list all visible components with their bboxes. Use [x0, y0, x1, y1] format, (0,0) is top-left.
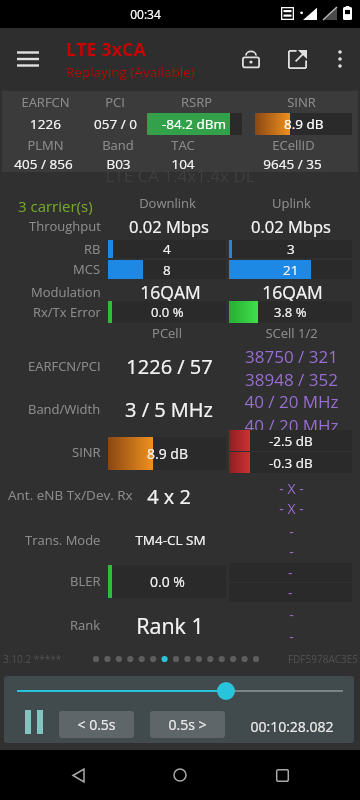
staticText: 3	[287, 240, 295, 258]
staticText: Rx/Tx Error	[33, 303, 101, 321]
staticText: B03	[106, 155, 131, 173]
staticText: ECellID	[272, 136, 315, 154]
staticText: 3 carrier(s)	[18, 196, 93, 216]
staticText: 4	[163, 240, 171, 258]
staticText: 40 / 20 MHz	[244, 390, 339, 413]
staticText: - X -	[279, 479, 304, 498]
staticText: -	[288, 583, 293, 602]
staticText: 1226 / 57	[126, 353, 213, 380]
staticText: RB	[84, 240, 101, 258]
button[interactable]: More options	[320, 39, 360, 79]
button[interactable]: Recent apps	[258, 751, 306, 799]
staticText: SINR	[287, 93, 316, 111]
staticText: 0.0 %	[150, 572, 185, 591]
staticText: 0.02 Mbps	[129, 215, 209, 237]
staticText: -	[289, 522, 294, 541]
staticText: TAC	[171, 136, 195, 154]
staticText: Uplink	[272, 194, 311, 212]
staticText: -	[289, 605, 294, 624]
button[interactable]: < 0.5s	[59, 711, 134, 738]
staticText: 4 x 2	[147, 483, 191, 510]
staticText: -	[289, 542, 294, 561]
staticText: EARFCN/PCI	[28, 357, 101, 375]
staticText: FDF5978AC3E5	[287, 652, 358, 666]
button[interactable]: 0.5s >	[150, 711, 225, 738]
staticText: TM4-CL SM	[135, 531, 206, 549]
staticText: 405 / 856	[14, 155, 73, 173]
staticText: 16QAM	[262, 280, 323, 304]
staticText: Downlink	[139, 194, 196, 212]
staticText: 00:10:28.082	[232, 717, 352, 736]
staticText: MCS	[73, 260, 101, 278]
button[interactable]: Home	[156, 751, 204, 799]
staticText: 0.0 %	[151, 303, 184, 321]
staticText: 16QAM	[140, 280, 201, 304]
button[interactable]: Back	[54, 751, 102, 799]
staticText: 8.9 dB	[284, 115, 324, 133]
staticText: BLER	[70, 572, 101, 590]
staticText: -	[288, 563, 293, 582]
staticText: Band/Width	[28, 400, 101, 418]
staticText: 3.8 %	[274, 303, 307, 321]
staticText: Rank 1	[136, 611, 204, 639]
button[interactable]: Open in new window	[274, 36, 320, 82]
staticText: Modulation	[31, 283, 101, 301]
staticText: Trans. Mode	[25, 531, 101, 549]
staticText: Ant. eNB Tx/Dev. Rx	[8, 486, 133, 504]
staticText: < 0.5s	[77, 715, 116, 734]
staticText: RSRP	[181, 93, 212, 111]
staticText: SCell 1/2	[265, 324, 318, 342]
staticText: 3 / 5 MHz	[125, 396, 213, 423]
staticText: Rank	[70, 616, 101, 634]
staticText: 38948 / 352	[245, 368, 338, 391]
staticText: PCell	[152, 324, 182, 342]
staticText: Band	[102, 136, 134, 154]
staticText: Throughput	[29, 217, 101, 235]
staticText: Replaying (Available)	[66, 63, 195, 81]
staticText: EARFCN	[21, 93, 70, 111]
staticText: 38750 / 321	[245, 345, 338, 368]
staticText: -84.2 dBm	[162, 115, 227, 133]
staticText: - X -	[279, 499, 304, 518]
staticText: 8	[163, 261, 171, 279]
staticText: -	[289, 627, 294, 646]
staticText: 40 / 20 MHz	[244, 414, 339, 437]
staticText: PCI	[105, 93, 125, 111]
staticText: 21	[283, 261, 299, 279]
staticText: 0.02 Mbps	[251, 215, 331, 237]
staticText: 8.9 dB	[147, 444, 188, 463]
staticText: -2.5 dB	[269, 432, 313, 450]
button[interactable]: Lock	[228, 36, 274, 82]
button[interactable]: Navigation menu	[0, 31, 56, 87]
staticText: LTE CA 1.4x1.4x DL	[105, 164, 255, 187]
staticText: PLMN	[27, 136, 64, 154]
staticText: 9645 / 35	[263, 155, 322, 173]
staticText: 104	[171, 155, 195, 173]
staticText: LTE 3xCA	[66, 37, 146, 62]
staticText: 3.10.2 *****	[3, 652, 62, 666]
staticText: SINR	[72, 443, 101, 461]
staticText: 00:34	[130, 6, 161, 22]
staticText: 0.5s >	[168, 715, 207, 734]
staticText: 057 / 0	[94, 115, 137, 133]
staticText: 1226	[30, 115, 61, 133]
button[interactable]: Pause	[12, 706, 56, 738]
staticText: -0.3 dB	[269, 454, 313, 472]
